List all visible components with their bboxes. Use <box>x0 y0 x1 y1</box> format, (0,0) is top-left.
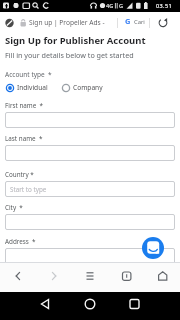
button[interactable] <box>144 262 180 292</box>
button[interactable] <box>142 237 164 259</box>
staticText: G <box>119 2 124 9</box>
button[interactable] <box>0 292 60 320</box>
staticText: Sign up | Propeller Ads - <box>29 18 105 27</box>
button[interactable]: Individual <box>5 83 60 93</box>
staticText: Last name * <box>5 134 43 143</box>
button[interactable] <box>120 292 180 320</box>
staticText: Fill in your details below to get starte… <box>5 50 134 60</box>
staticText: Account type * <box>5 70 52 79</box>
button[interactable] <box>5 214 175 230</box>
staticText: Sign Up for Publisher Account <box>5 34 146 47</box>
staticText: City * <box>5 203 23 212</box>
button[interactable] <box>60 292 120 320</box>
button[interactable] <box>108 262 144 292</box>
staticText: G <box>125 16 131 26</box>
button[interactable]: Company <box>61 83 111 93</box>
button[interactable] <box>5 145 175 161</box>
staticText: 03.51 <box>156 2 173 9</box>
staticText: Start to type <box>10 185 47 194</box>
button[interactable] <box>5 181 175 197</box>
button[interactable] <box>36 262 72 292</box>
staticText: Cari <box>134 18 145 26</box>
staticText: Individual <box>17 83 48 92</box>
button[interactable] <box>0 262 36 292</box>
button[interactable]: Sign up | Propeller Ads - <box>0 12 180 30</box>
staticText: Address * <box>5 237 36 246</box>
staticText: Company <box>73 83 103 92</box>
staticText: First name * <box>5 101 44 110</box>
button[interactable] <box>72 262 108 292</box>
staticText: 4G <box>106 2 114 9</box>
staticText: Country * <box>5 170 34 179</box>
button[interactable] <box>5 112 175 128</box>
button[interactable] <box>5 248 175 264</box>
